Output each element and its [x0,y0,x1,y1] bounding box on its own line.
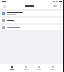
button[interactable] [0,11,64,16]
button[interactable]: More options [58,4,62,8]
button[interactable]: Home [8,65,15,71]
button[interactable]: Search [22,65,29,71]
button[interactable]: Action [53,5,57,7]
button[interactable]: Profile [49,65,56,71]
button[interactable]: Menu [2,4,7,9]
button[interactable]: Library [35,65,42,71]
button[interactable] [0,25,64,30]
button[interactable] [0,18,64,23]
